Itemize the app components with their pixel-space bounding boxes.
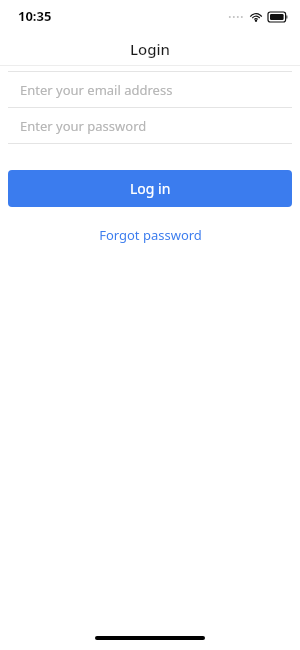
button[interactable]: Forgot password [0,223,300,247]
button[interactable]: Enter your password [8,108,292,143]
staticText: 10:35 [18,7,52,25]
staticText: Enter your email address [20,81,173,99]
button[interactable]: Enter your email address [8,72,292,107]
other: Battery [268,12,288,22]
other: Wi-Fi [249,11,263,22]
staticText: Enter your password [20,117,147,135]
other: Cellular signal [228,12,244,22]
staticText: Login [130,39,170,59]
staticText: Forgot password [99,226,202,244]
staticText: Log in [130,179,171,198]
button[interactable]: Log in [8,170,292,207]
